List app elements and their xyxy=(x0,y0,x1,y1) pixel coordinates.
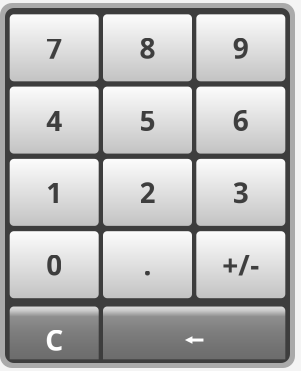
staticText: 5 xyxy=(139,101,155,139)
staticText: 4 xyxy=(46,101,62,139)
staticText: 6 xyxy=(233,101,249,139)
staticText: C xyxy=(45,321,63,359)
staticText: +/- xyxy=(222,246,259,283)
staticText: . xyxy=(143,246,151,283)
staticText: 9 xyxy=(233,29,249,66)
button[interactable]: 0 xyxy=(10,231,99,298)
staticText: 0 xyxy=(46,246,62,283)
staticText: 3 xyxy=(233,174,249,211)
button[interactable]: Backspace xyxy=(103,306,285,371)
staticText: 2 xyxy=(139,174,155,211)
button[interactable]: . xyxy=(103,231,192,298)
button[interactable]: +/- xyxy=(196,231,285,298)
staticText: 7 xyxy=(46,29,62,66)
button[interactable]: C xyxy=(10,306,99,371)
button[interactable]: 5 xyxy=(103,87,192,154)
button[interactable]: 7 xyxy=(10,14,99,81)
button[interactable]: 2 xyxy=(103,159,192,226)
button[interactable]: 4 xyxy=(10,87,99,154)
button[interactable]: 3 xyxy=(196,159,285,226)
button[interactable]: 8 xyxy=(103,14,192,81)
staticText: 1 xyxy=(46,174,62,211)
button[interactable]: 6 xyxy=(196,87,285,154)
staticText: 8 xyxy=(139,29,155,66)
button[interactable]: 9 xyxy=(196,14,285,81)
button[interactable]: 1 xyxy=(10,159,99,226)
